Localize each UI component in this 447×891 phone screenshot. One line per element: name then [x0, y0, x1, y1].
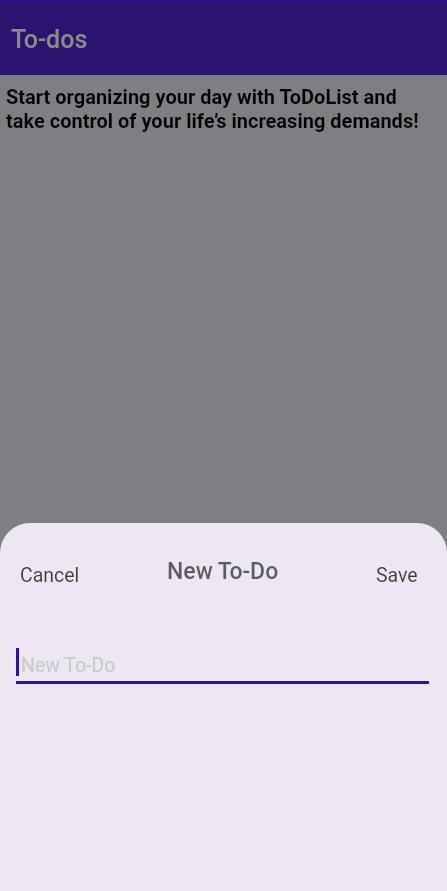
- button[interactable]: Cancel: [0, 554, 100, 597]
- staticText: Cancel: [20, 564, 80, 587]
- staticText: New To-Do: [21, 654, 116, 677]
- staticText: Save: [376, 564, 418, 587]
- staticText: New To-Do: [167, 558, 279, 585]
- staticText: Start organizing your day with ToDoList …: [6, 85, 419, 133]
- button[interactable]: Save: [356, 554, 447, 597]
- button[interactable]: New To-Do text field: [16, 648, 429, 684]
- staticText: To-dos: [11, 25, 88, 54]
